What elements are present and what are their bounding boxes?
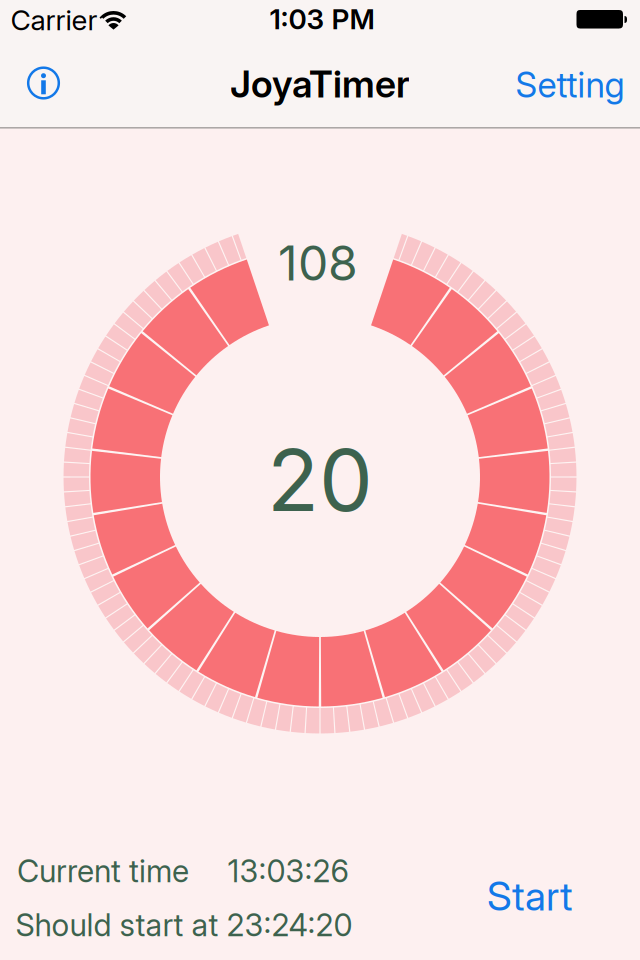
staticText: Start [487, 872, 573, 920]
staticText: 20 [267, 430, 373, 530]
staticText: 13:03:26 [227, 853, 348, 889]
staticText: Setting [515, 65, 624, 105]
staticText: Should start at 23:24:20 [15, 907, 352, 943]
staticText: 1:03 PM [269, 2, 374, 35]
button[interactable]: Start [487, 872, 573, 920]
staticText: 108 [278, 235, 358, 291]
button[interactable]: Setting [515, 65, 624, 105]
staticText: JoyaTimer [230, 62, 410, 106]
staticText: Current time [17, 853, 189, 889]
staticText: Carrier [10, 3, 97, 36]
button[interactable]: Info [26, 65, 61, 100]
